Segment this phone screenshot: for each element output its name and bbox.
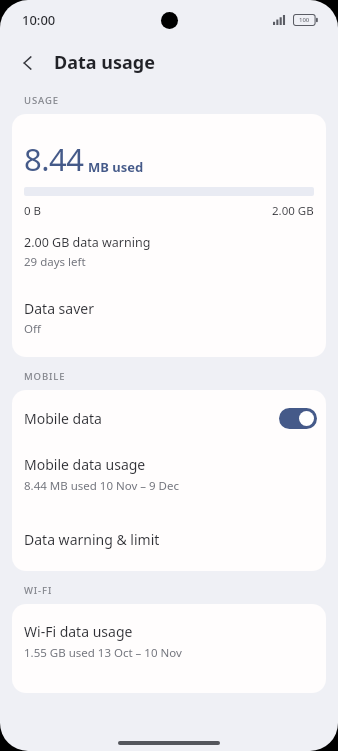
staticText: Off — [24, 321, 41, 337]
staticText: Mobile data usage — [24, 455, 146, 474]
staticText: 8.44 — [24, 138, 84, 180]
button[interactable]: Data warning & limit — [12, 510, 326, 571]
staticText: 2.00 GB data warning — [24, 234, 151, 251]
staticText: 8.44 MB used 10 Nov – 9 Dec — [24, 478, 180, 494]
button[interactable]: Data saver — [12, 282, 326, 357]
button[interactable]: 2.00 GB data warning — [12, 219, 326, 282]
staticText: MB used — [88, 158, 144, 176]
button[interactable]: Mobile data toggle — [279, 408, 317, 429]
staticText: Mobile data — [24, 409, 279, 428]
staticText: 0 B — [24, 203, 42, 219]
staticText: MOBILE — [24, 370, 66, 383]
button[interactable]: Wi-Fi data usage — [12, 604, 326, 693]
staticText: 100 — [299, 16, 310, 24]
button[interactable]: Mobile data usage — [12, 447, 326, 510]
staticText: Data warning & limit — [24, 530, 160, 549]
staticText: 1.55 GB used 13 Oct – 10 Nov — [24, 645, 182, 661]
staticText: 2.00 GB — [272, 203, 314, 219]
staticText: 29 days left — [24, 254, 86, 270]
button[interactable]: Back — [9, 44, 46, 81]
staticText: 10:00 — [22, 11, 56, 29]
button[interactable]: Mobile data — [12, 390, 326, 447]
staticText: Data saver — [24, 299, 94, 318]
staticText: Wi-Fi data usage — [24, 622, 133, 641]
staticText: Data usage — [54, 50, 155, 75]
staticText: USAGE — [24, 94, 59, 107]
staticText: WI-FI — [24, 584, 53, 597]
